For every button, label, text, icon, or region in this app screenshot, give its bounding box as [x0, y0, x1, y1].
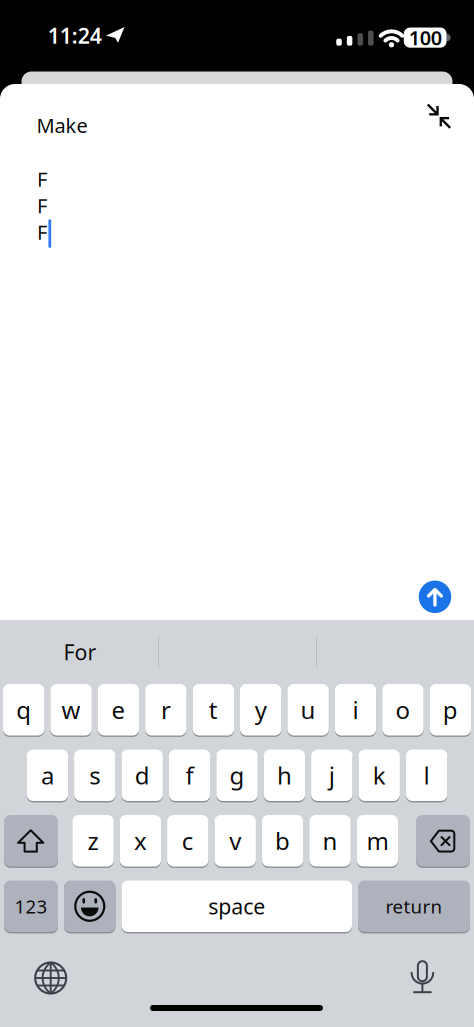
staticText: v — [229, 825, 241, 857]
button[interactable]: i — [335, 684, 376, 735]
staticText: u — [301, 694, 316, 726]
button[interactable]: q — [3, 684, 44, 735]
button[interactable] — [419, 580, 451, 613]
staticText: 11:24 — [48, 21, 102, 50]
staticText: s — [89, 759, 100, 791]
button[interactable]: u — [287, 684, 329, 735]
staticText: l — [424, 759, 430, 791]
button[interactable]: f — [169, 749, 210, 801]
staticText: For — [63, 638, 96, 666]
staticText: d — [135, 759, 150, 791]
button[interactable]: p — [430, 684, 471, 735]
button[interactable]: d — [121, 749, 163, 801]
button[interactable]: z — [72, 815, 114, 866]
staticText: q — [16, 694, 31, 726]
button[interactable]: y — [240, 684, 281, 735]
staticText: F — [37, 219, 47, 245]
staticText: g — [229, 759, 244, 791]
button[interactable] — [405, 960, 439, 994]
button[interactable]: l — [406, 749, 447, 801]
button[interactable]: a — [27, 749, 68, 801]
button[interactable]: For — [20, 629, 140, 675]
button[interactable]: s — [74, 749, 115, 801]
staticText: o — [395, 694, 410, 726]
button[interactable]: g — [216, 749, 258, 801]
staticText: 123 — [14, 894, 47, 919]
button[interactable]: b — [262, 815, 303, 866]
button[interactable]: r — [145, 684, 187, 735]
staticText: 100 — [409, 24, 442, 51]
staticText: F — [37, 166, 47, 192]
staticText: f — [186, 759, 194, 791]
button[interactable]: t — [193, 684, 234, 735]
button[interactable] — [33, 960, 69, 996]
staticText: k — [373, 759, 386, 791]
staticText: z — [87, 825, 98, 857]
button[interactable]: 123 — [4, 880, 58, 932]
button[interactable]: return — [358, 880, 470, 932]
staticText: p — [443, 694, 458, 726]
staticText: i — [352, 694, 358, 726]
button[interactable]: space — [121, 880, 352, 932]
staticText: h — [277, 759, 292, 791]
staticText: space — [208, 892, 265, 920]
staticText: x — [134, 825, 147, 857]
button[interactable]: n — [309, 815, 351, 866]
button[interactable]: h — [264, 749, 305, 801]
staticText: return — [385, 894, 442, 919]
button[interactable]: k — [358, 749, 400, 801]
staticText: j — [329, 759, 335, 791]
staticText: a — [41, 759, 54, 791]
button[interactable]: j — [311, 749, 352, 801]
button[interactable] — [416, 815, 470, 866]
button[interactable]: o — [382, 684, 424, 735]
staticText: t — [209, 694, 218, 726]
button[interactable]: m — [357, 815, 398, 866]
staticText: w — [62, 694, 81, 726]
button[interactable] — [64, 880, 115, 932]
staticText: n — [322, 825, 337, 857]
button[interactable]: e — [98, 684, 139, 735]
button[interactable]: v — [214, 815, 256, 866]
button[interactable]: w — [50, 684, 92, 735]
staticText: e — [111, 694, 125, 726]
staticText: b — [275, 825, 290, 857]
staticText: r — [161, 694, 171, 726]
button[interactable]: c — [167, 815, 208, 866]
staticText: Make — [36, 112, 87, 139]
staticText: c — [182, 825, 194, 857]
staticText: y — [255, 694, 267, 726]
button[interactable] — [0, 0, 474, 1027]
staticText: m — [366, 825, 388, 857]
button[interactable]: x — [120, 815, 161, 866]
button[interactable] — [4, 815, 58, 866]
staticText: F — [37, 192, 47, 219]
